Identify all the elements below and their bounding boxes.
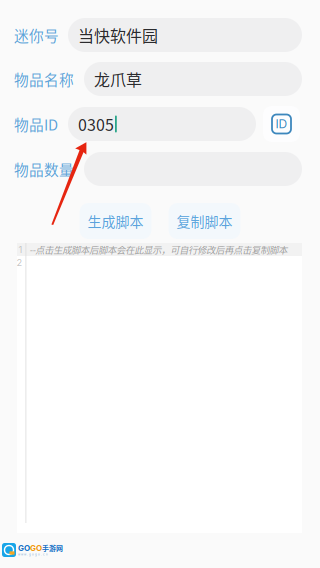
staticText: 1 — [18, 244, 22, 255]
staticText: GO — [30, 543, 42, 553]
staticText: 2 — [16, 257, 22, 268]
staticText: 物品ID — [14, 113, 58, 135]
staticText: ID — [275, 117, 287, 131]
button[interactable]: 龙爪草 — [84, 62, 302, 96]
staticText: 生成脚本 — [87, 211, 143, 231]
staticText: 物品名称 — [14, 68, 74, 90]
button[interactable]: 复制脚本 — [168, 203, 240, 239]
button[interactable] — [84, 152, 302, 186]
staticText: 复制脚本 — [176, 211, 232, 231]
staticText: 物品数量 — [14, 158, 74, 180]
staticText: 当快软件园 — [78, 23, 158, 47]
staticText: 手游网 — [42, 543, 63, 553]
staticText: GO — [18, 543, 30, 553]
button[interactable]: Choose item ID — [263, 106, 300, 142]
staticText: --点击生成脚本后脚本会在此显示，可自行修改后再点击复制脚本 — [29, 243, 287, 256]
staticText: w w w . g o g o . c n — [18, 553, 48, 556]
button[interactable]: 生成脚本 — [79, 203, 151, 239]
staticText: 0305 — [78, 112, 114, 136]
staticText: 龙爪草 — [94, 67, 142, 91]
button[interactable]: 0305 — [68, 107, 256, 141]
staticText: 迷你号 — [14, 24, 59, 46]
button[interactable]: 当快软件园 — [68, 18, 302, 52]
